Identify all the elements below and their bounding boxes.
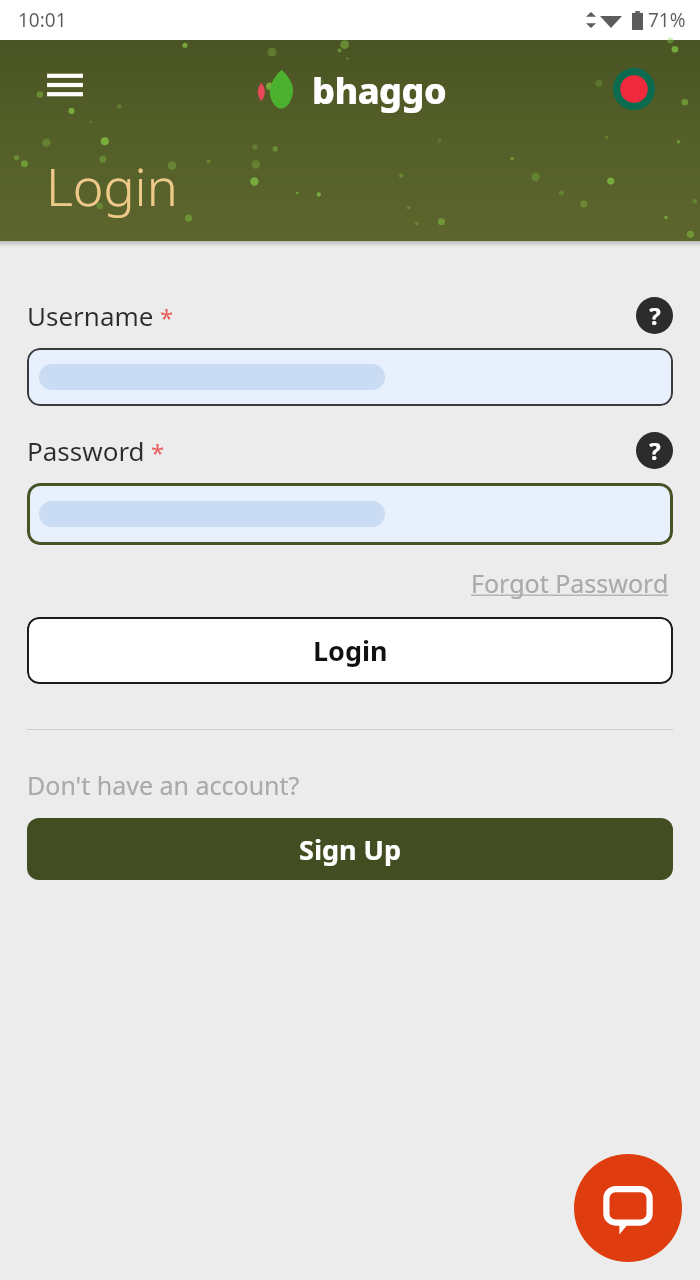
button[interactable]: Menu xyxy=(42,62,88,108)
button[interactable]: Language xyxy=(610,65,658,113)
staticText: * xyxy=(160,301,174,334)
staticText: Don't have an account? xyxy=(27,768,300,802)
button[interactable]: Help xyxy=(636,297,673,334)
staticText: ? xyxy=(649,299,661,332)
staticText: Login xyxy=(46,150,178,221)
button[interactable]: Input field xyxy=(27,348,673,406)
staticText: Password xyxy=(27,433,145,468)
staticText: 71% xyxy=(648,7,686,33)
staticText: Sign Up xyxy=(299,831,402,868)
staticText: bhaggo xyxy=(312,66,447,115)
staticText: ? xyxy=(649,434,661,467)
button[interactable]: Input field xyxy=(27,483,673,545)
button[interactable]: Forgot Password xyxy=(467,562,673,604)
button[interactable]: Help xyxy=(636,432,673,469)
staticText: Login xyxy=(313,632,388,669)
button[interactable]: Sign Up xyxy=(27,818,673,880)
button[interactable]: Login xyxy=(27,617,673,684)
staticText: * xyxy=(151,436,165,469)
staticText: Username xyxy=(27,298,154,333)
staticText: 10:01 xyxy=(18,7,67,33)
button[interactable]: Open chat xyxy=(574,1154,682,1262)
